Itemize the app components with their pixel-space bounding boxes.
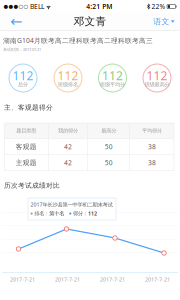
staticText: 50 [105,142,113,151]
staticText: 排名： [34,210,49,217]
staticText: 主、客观题得分 [4,103,53,112]
staticText: 4:21 PM [86,2,112,11]
staticText: ●●●○○ [3,3,28,10]
staticText: 得分： [73,210,88,217]
staticText: 题目类型 [16,127,36,134]
staticText: 班级平均分 [100,81,125,88]
staticText: 38 [148,158,156,167]
staticText: 50 [105,158,113,167]
staticText: 112 [57,67,78,83]
staticText: 班级最高分 [144,81,169,88]
staticText: 客观题 [16,143,37,151]
button[interactable]: 语文 [151,13,177,30]
staticText: 2017-7-21 [145,276,170,283]
staticText: 112 [12,67,33,83]
staticText: 考试时间：2017-07-21 [3,47,41,52]
staticText: 语文 [153,17,169,26]
button[interactable]: Back [3,13,29,30]
staticText: 112 [146,67,167,83]
staticText: 历次考试成绩对比 [4,181,60,190]
staticText: 38 [148,142,156,151]
staticText: 湖南G104月联考高二理科联考高二理科联考高三 [3,36,153,45]
staticText: 2017年长沙县第一中学初二期末考试 [30,201,112,208]
staticText: ← [10,13,22,30]
staticText: 班级排名 [58,81,78,88]
staticText: 112 [102,67,123,83]
staticText: 最高分 [101,127,116,134]
staticText: 我的得分 [58,127,78,134]
staticText: 2017-7-21 [10,276,35,283]
staticText: 22% [151,2,165,11]
staticText: 42 [64,158,72,167]
staticText: 112 [88,210,97,217]
staticText: 平均得分 [142,127,162,134]
staticText: 总分 [18,81,28,88]
staticText: BELL [30,2,44,11]
staticText: 主观题 [16,159,37,167]
staticText: 2017-7-21 [100,276,125,283]
staticText: 42 [64,142,72,151]
staticText: 第十名 [49,210,64,217]
staticText: 邓文青 [73,15,106,28]
staticText: 2017-7-21 [55,276,80,283]
